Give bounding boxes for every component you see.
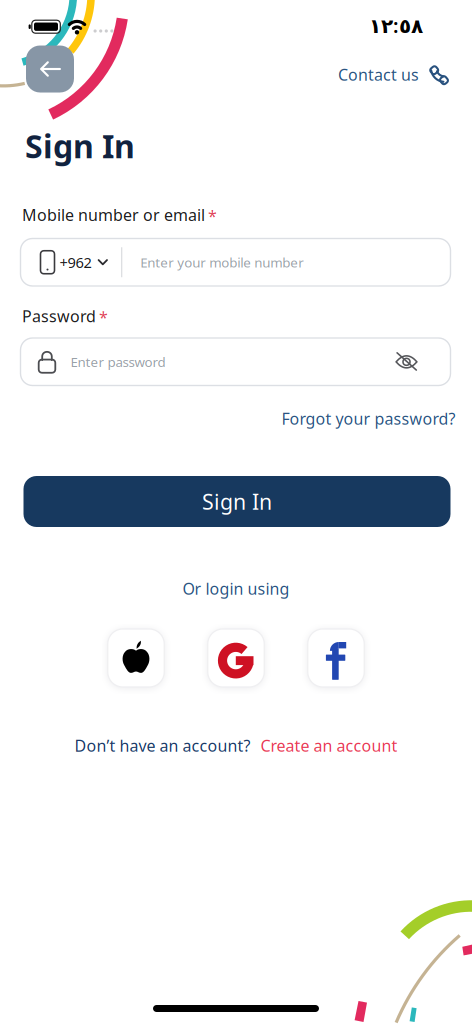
- button[interactable]: Contact us: [338, 64, 448, 85]
- button[interactable]: Show password: [394, 352, 450, 371]
- staticText: Contact us: [338, 64, 419, 85]
- staticText: Sign In: [202, 487, 272, 516]
- staticText: Forgot your password?: [281, 408, 455, 429]
- button[interactable]: Sign in with Apple: [108, 629, 164, 687]
- button[interactable]: Sign In: [23, 476, 450, 527]
- button[interactable]: Create an account: [260, 735, 397, 756]
- staticText: Mobile number or email: [22, 204, 205, 225]
- button[interactable]: Mobile number: [20, 238, 450, 286]
- staticText: Enter your mobile number: [140, 253, 304, 271]
- button[interactable]: Password: [20, 338, 450, 385]
- staticText: +962: [59, 252, 91, 272]
- button[interactable]: Sign in with Facebook: [308, 629, 364, 687]
- staticText: *: [208, 205, 217, 226]
- staticText: *: [99, 306, 108, 327]
- button[interactable]: Sign in with Google: [208, 629, 264, 687]
- staticText: ١٢:٥٨: [369, 12, 423, 39]
- staticText: Don’t have an account?: [74, 735, 250, 756]
- staticText: Sign In: [25, 124, 135, 167]
- staticText: Enter password: [70, 353, 165, 371]
- button[interactable]: Forgot your password?: [281, 408, 455, 429]
- staticText: Create an account: [260, 735, 397, 756]
- staticText: Or login using: [182, 578, 289, 599]
- button[interactable]: Back: [26, 45, 74, 92]
- staticText: Password: [22, 305, 96, 326]
